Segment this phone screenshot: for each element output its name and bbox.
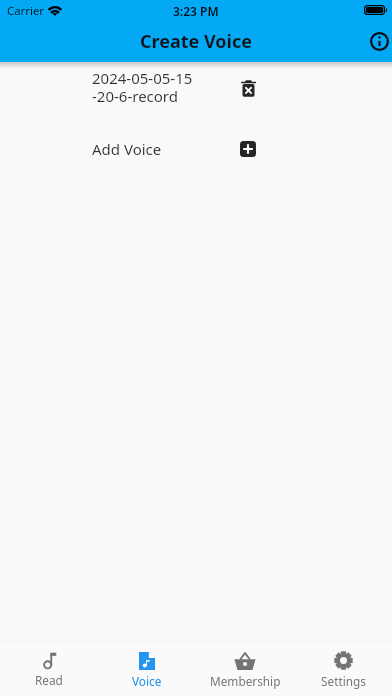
staticText: Membership (210, 673, 281, 689)
staticText: Carrier (7, 3, 45, 19)
button[interactable]: Info (361, 23, 392, 59)
staticText: Voice (132, 673, 162, 689)
button[interactable]: Settings (294, 643, 392, 696)
staticText: Settings (321, 673, 366, 689)
staticText: Add Voice (92, 139, 162, 159)
staticText: Create Voice (140, 29, 253, 54)
button[interactable]: Membership (196, 643, 294, 696)
button[interactable]: Voice (98, 643, 196, 696)
staticText: 3:23 PM (173, 3, 219, 19)
staticText: Read (35, 672, 63, 688)
button[interactable]: Read (0, 643, 98, 696)
staticText: 2024-05-05-15 -20-6-record (92, 68, 193, 106)
button[interactable]: 2024-05-05-15 -20-6-record (0, 62, 392, 112)
button[interactable]: Add voice (232, 133, 264, 165)
button[interactable]: Delete recording (232, 72, 264, 104)
button[interactable]: Add Voice (0, 127, 392, 171)
